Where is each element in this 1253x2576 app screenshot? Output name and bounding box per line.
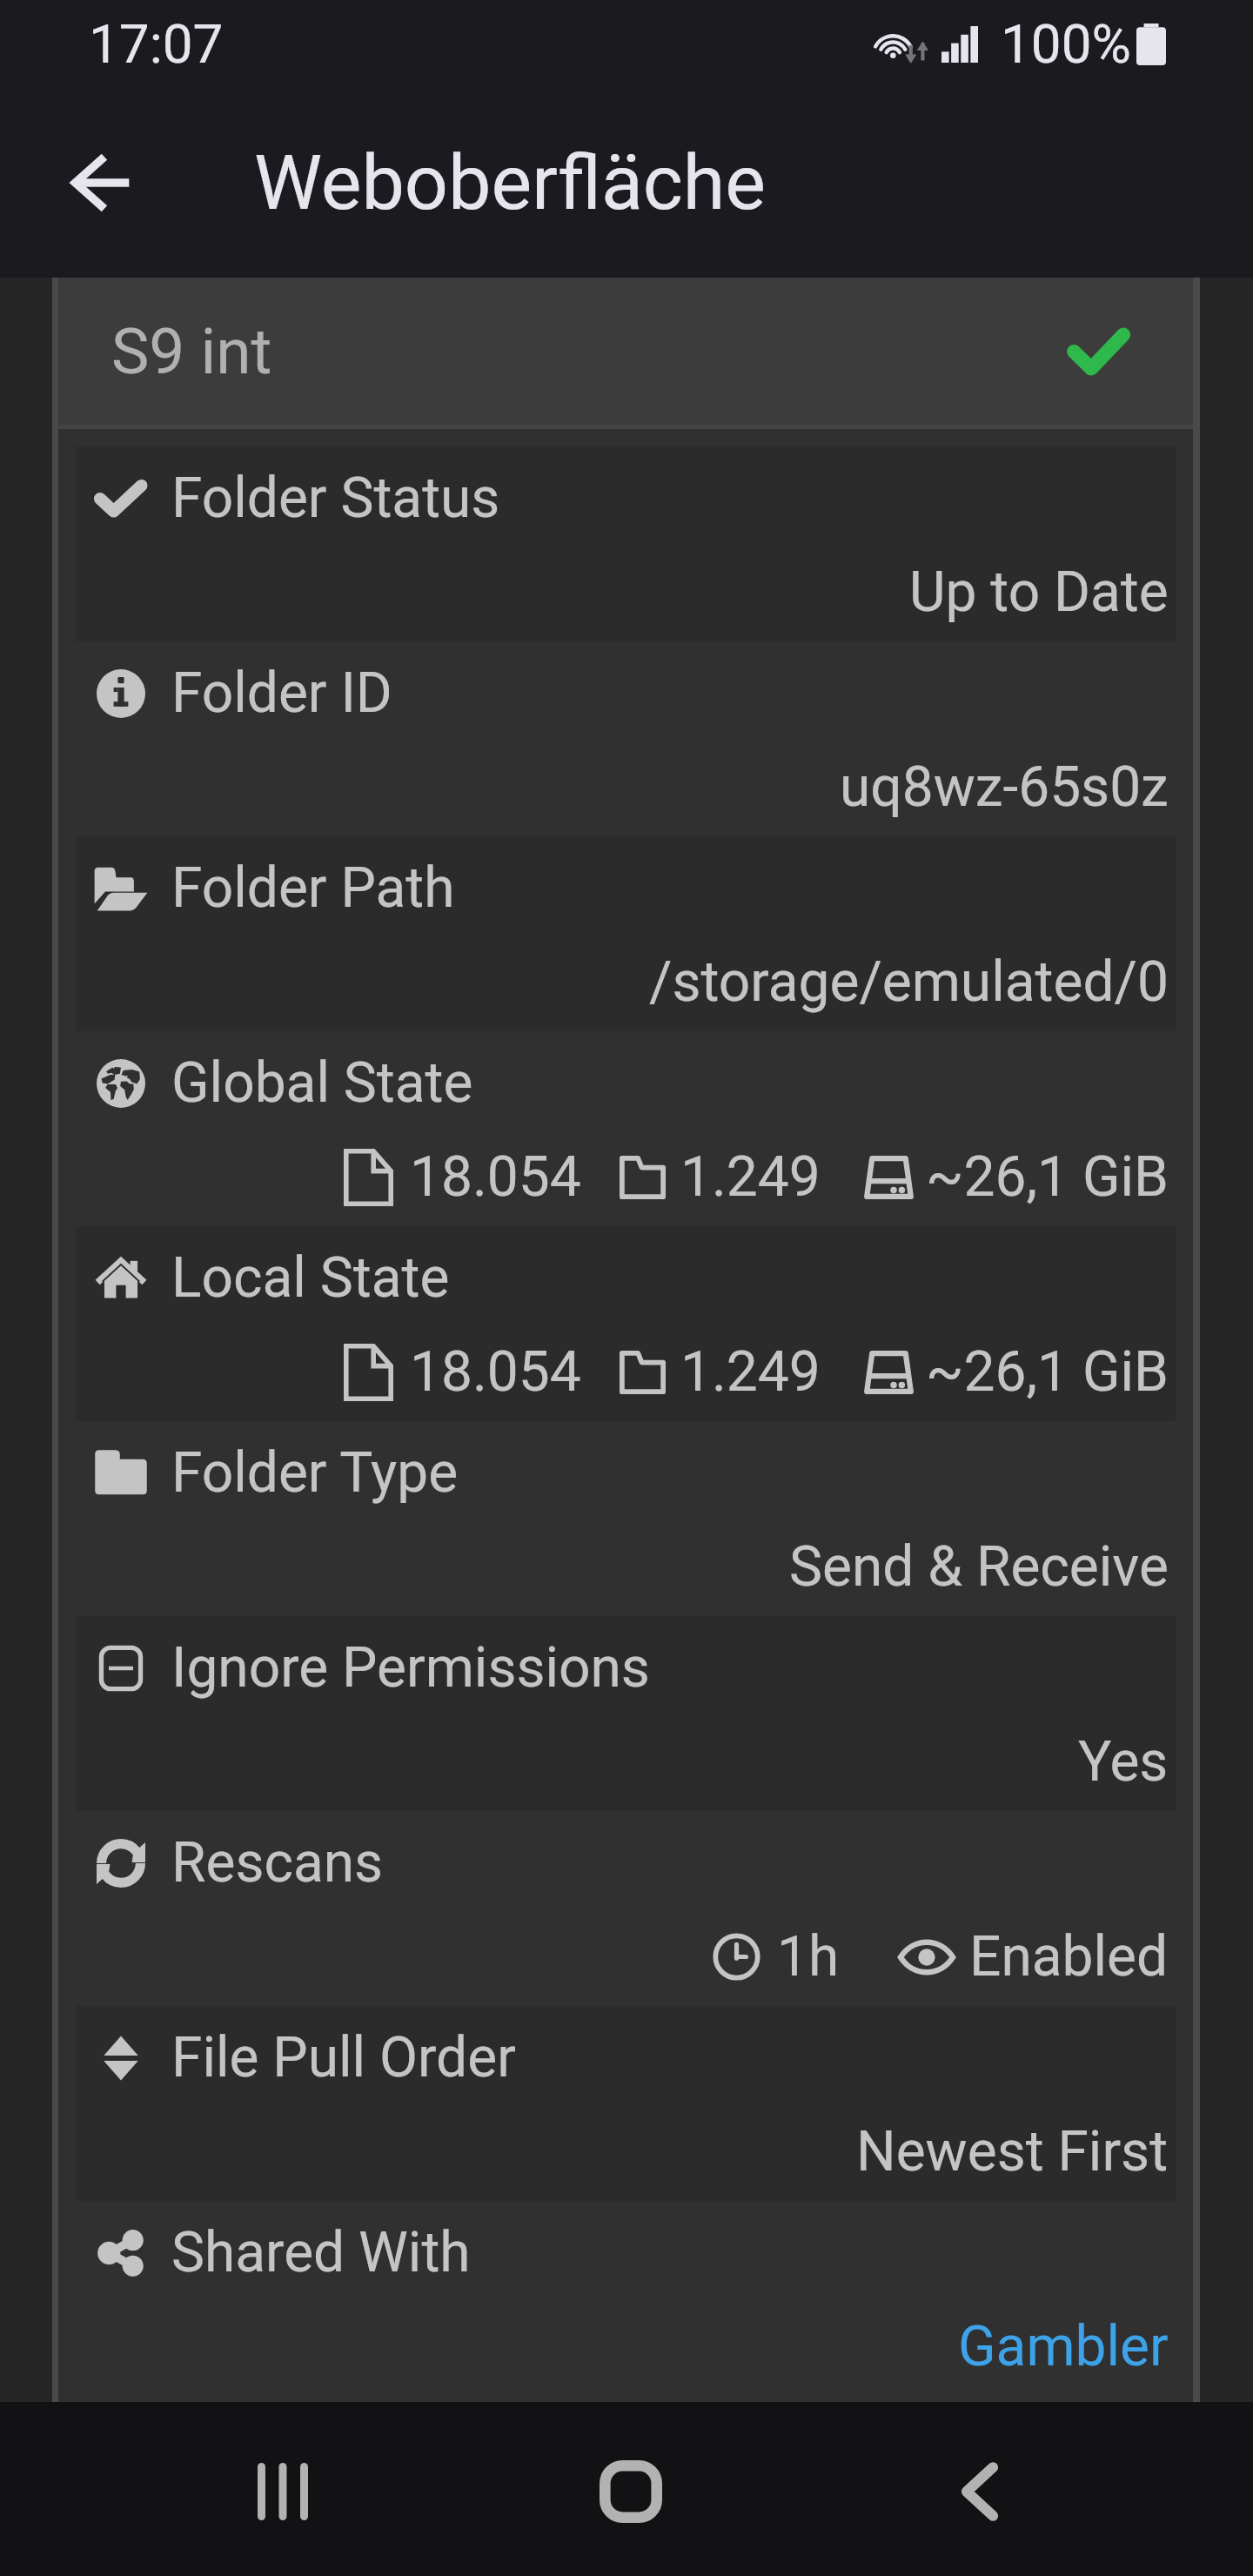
staticText: Folder ID [171,661,392,726]
staticText: 1.249 [680,1339,821,1405]
staticText: 18.054 [410,1144,581,1210]
button[interactable]: Recent apps [213,2422,352,2561]
staticText: Local State [171,1245,450,1311]
staticText: Folder Status [171,466,500,531]
staticText: Newest First [856,2119,1169,2184]
button[interactable]: S9 int [58,278,1193,425]
staticText: Yes [1078,1729,1169,1794]
staticText: Gambler [958,2314,1169,2379]
button[interactable]: Folder Type [58,1421,1193,1616]
staticText: ~26,1 GiB [926,1144,1169,1210]
staticText: 1.249 [680,1144,821,1210]
staticText: /storage/emulated/0 [649,949,1169,1015]
button[interactable]: Local State [58,1226,1193,1421]
staticText: Weboberfläche [254,138,766,227]
staticText: 17:07 [89,12,224,76]
staticText: Enabled [969,1924,1169,1989]
staticText: uq8wz-65s0z [840,755,1169,820]
staticText: Send & Receive [789,1534,1169,1600]
staticText: Ignore Permissions [171,1635,650,1701]
staticText: Folder Type [171,1440,459,1506]
button[interactable]: Folder ID [58,641,1193,836]
staticText: 100% [1001,12,1131,76]
button[interactable]: Back [40,122,162,244]
staticText: Shared With [171,2220,471,2285]
button[interactable]: Home [561,2422,700,2561]
staticText: 18.054 [410,1339,581,1405]
staticText: Rescans [171,1830,384,1895]
button[interactable]: Folder Status [58,446,1193,641]
staticText: Up to Date [909,560,1169,625]
staticText: S9 int [111,314,272,389]
button[interactable]: Back [910,2422,1049,2561]
button[interactable]: File Pull Order [58,2006,1193,2201]
staticText: Global State [171,1050,473,1116]
button[interactable]: Global State [58,1031,1193,1226]
button[interactable]: Shared With [58,2201,1193,2396]
button[interactable]: Ignore Permissions [58,1616,1193,1811]
button[interactable]: Folder Path [58,836,1193,1031]
button[interactable]: Rescans [58,1811,1193,2006]
staticText: File Pull Order [171,2025,516,2090]
staticText: Folder Path [171,855,455,921]
staticText: 1h [777,1924,840,1989]
staticText: ~26,1 GiB [926,1339,1169,1405]
